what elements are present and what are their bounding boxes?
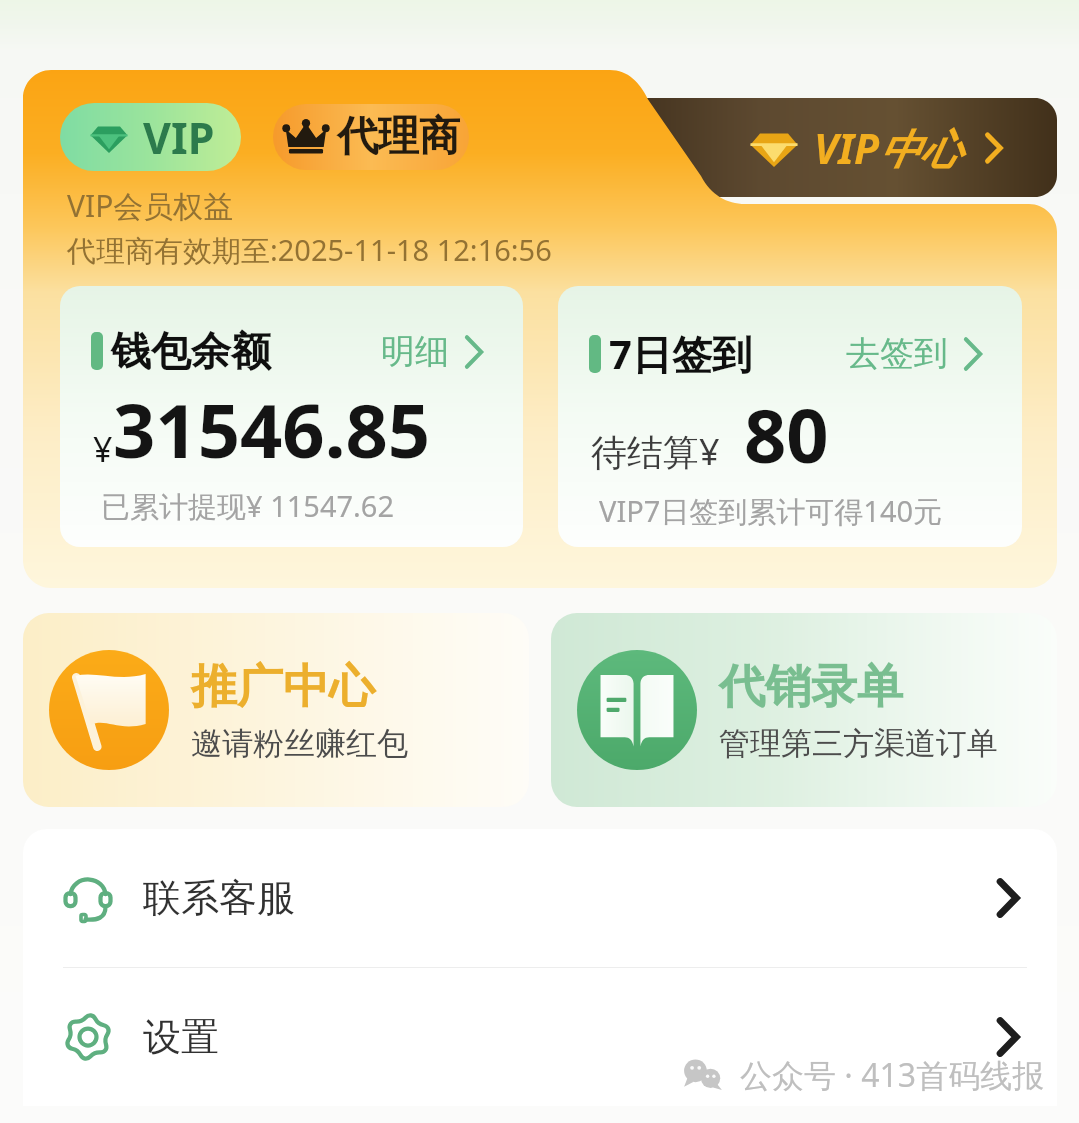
staticText: 推广中心 [191,658,375,716]
button[interactable]: Contact support [23,829,1057,967]
staticText: 代销录单 [719,658,903,716]
staticText: 公众号 · 413首码线报 [740,1053,1045,1097]
staticText: VIP7日签到累计可得140元 [599,491,943,529]
button[interactable] [633,98,1057,197]
staticText: 80 [744,384,829,485]
staticText: 代理商有效期至:2025-11-18 12:16:56 [67,230,552,270]
staticText: 管理第三方渠道订单 [719,724,998,763]
button[interactable]: 代理商 [273,104,469,170]
staticText: 已累计提现¥ 11547.62 [101,486,395,526]
staticText: 邀请粉丝赚红包 [191,724,408,763]
staticText: VIP中心 [814,120,961,176]
staticText: 去签到 [846,332,948,375]
staticText: 联系客服 [143,874,295,922]
staticText: VIP [143,108,215,167]
staticText: VIP会员权益 [67,185,234,226]
staticText: 31546.85 [113,379,431,480]
button[interactable]: Settings [23,968,1057,1106]
staticText: ¥ [93,426,113,472]
button[interactable]: VIP [60,103,241,171]
button[interactable]: 推广中心 [23,613,529,807]
staticText: 代理商 [337,111,460,163]
button[interactable]: 代销录单 [551,613,1057,807]
staticText: 设置 [143,1013,219,1061]
button[interactable]: 去签到 [846,332,1000,375]
staticText: 明细 [381,330,449,373]
staticText: 钱包余额 [111,326,271,376]
staticText: 7日签到 [609,326,752,381]
staticText: 待结算¥ [591,427,720,476]
other: Contact support [63,873,113,923]
other: Settings [63,1012,113,1062]
button[interactable]: 明细 [381,330,501,373]
